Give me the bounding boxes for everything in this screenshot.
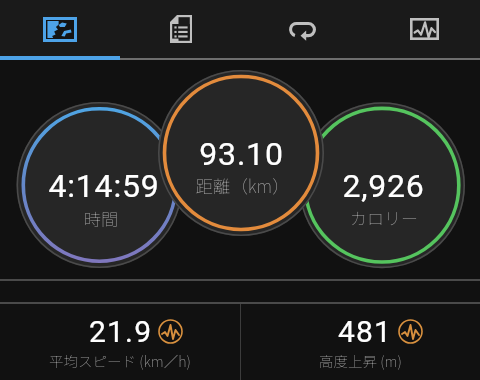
button[interactable]: Graphs [360,0,480,58]
staticText: 高度上昇 (m) [319,350,402,371]
staticText: 平均スピード (km／h) [49,350,191,371]
staticText: 93.10 [199,135,284,173]
staticText: 距離（km） [195,173,290,198]
button[interactable]: Details [120,0,240,58]
button[interactable]: Map [0,0,120,58]
staticText: 4:14:59 [48,167,160,205]
button[interactable]: 21.9 [0,304,240,380]
staticText: 481 [338,314,393,349]
staticText: 21.9 [89,314,153,349]
button[interactable]: 481 [240,304,480,380]
staticText: カロリー [350,205,418,230]
button[interactable]: Laps [240,0,360,58]
staticText: 2,926 [342,167,425,205]
staticText: 時間 [84,206,118,231]
